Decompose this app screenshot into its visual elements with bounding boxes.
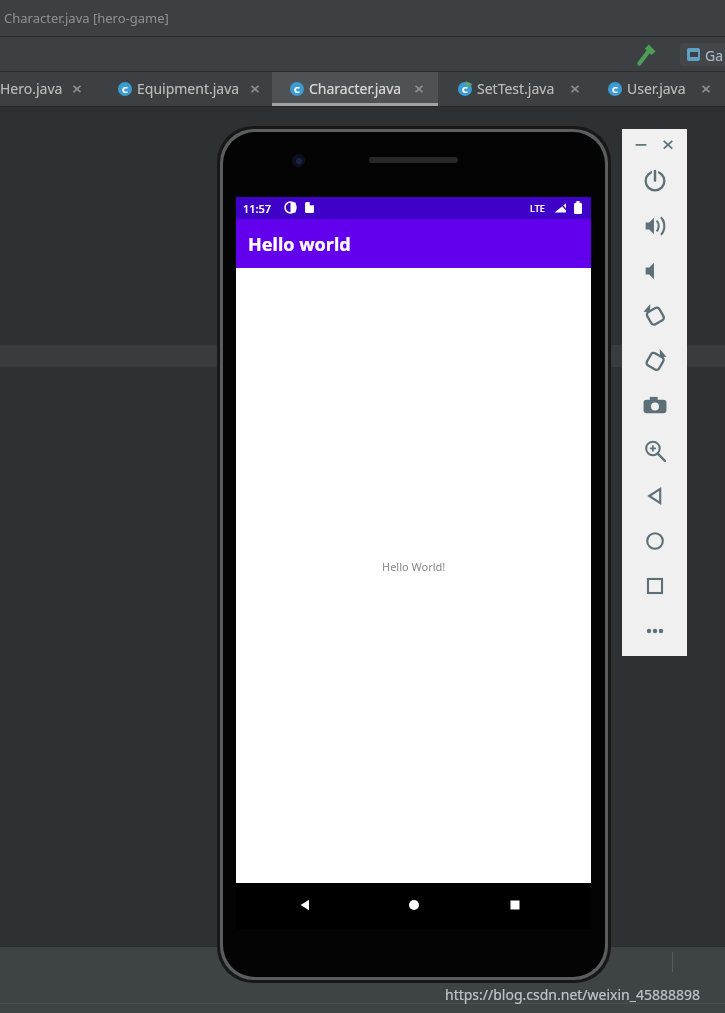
button[interactable]: Take screenshot [622, 383, 687, 428]
staticText: Hello world [248, 232, 351, 257]
staticText: C [462, 83, 468, 95]
button[interactable]: Minimize [632, 135, 650, 153]
staticText: SetTest.java [477, 79, 555, 98]
button[interactable]: C [448, 72, 594, 106]
button[interactable]: Close User.java [699, 82, 713, 96]
button[interactable]: Hero.java [0, 72, 96, 106]
button[interactable]: Recents [503, 893, 527, 917]
staticText: Ga [705, 46, 724, 65]
button[interactable]: C [280, 72, 438, 106]
button[interactable]: Rotate left [622, 293, 687, 338]
button[interactable]: Volume down [622, 248, 687, 293]
staticText: 11:57 [243, 201, 272, 216]
button[interactable]: More [622, 608, 687, 653]
staticText: C [612, 83, 618, 95]
button[interactable]: Close Hero.java [70, 82, 84, 96]
staticText: Character.java [hero-game] [4, 9, 169, 27]
button[interactable]: Back [622, 473, 687, 518]
staticText: Hello World! [382, 559, 446, 574]
button[interactable]: Home [402, 893, 426, 917]
button[interactable]: Home [622, 518, 687, 563]
button[interactable]: Close [659, 135, 677, 153]
button[interactable]: Zoom [622, 428, 687, 473]
button[interactable]: C [598, 72, 725, 106]
staticText: User.java [627, 79, 686, 98]
staticText: Character.java [309, 79, 402, 98]
button[interactable]: Overview [622, 563, 687, 608]
staticText: https://blog.csdn.net/weixin_45888898 [445, 985, 701, 1004]
staticText: LTE [530, 202, 545, 214]
button[interactable]: Close SetTest.java [568, 82, 582, 96]
staticText: Equipment.java [137, 79, 240, 98]
button[interactable]: Ga [680, 43, 725, 66]
staticText: C [122, 83, 128, 95]
button[interactable]: C [108, 72, 274, 106]
button[interactable]: Close Equipment.java [248, 82, 262, 96]
button[interactable]: Rotate right [622, 338, 687, 383]
button[interactable]: Power [622, 158, 687, 203]
button[interactable]: Back [293, 893, 317, 917]
button[interactable]: Volume up [622, 203, 687, 248]
staticText: C [294, 83, 300, 95]
button[interactable]: Make project [632, 40, 660, 68]
staticText: Hero.java [0, 79, 63, 98]
button[interactable]: Close Character.java [412, 82, 426, 96]
